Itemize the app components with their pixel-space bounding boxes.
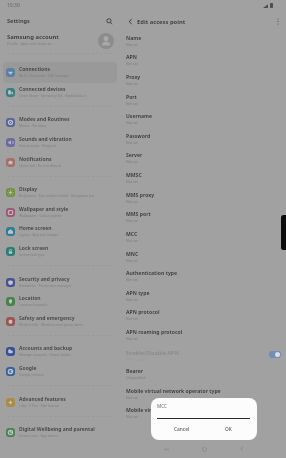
staticText: Notifications <box>19 156 52 163</box>
staticText: MCC <box>157 403 167 409</box>
staticText: Not set <box>126 42 138 47</box>
staticText: Google services <box>19 372 45 377</box>
button[interactable]: Google <box>0 361 119 381</box>
staticText: Security and privacy <box>19 276 70 283</box>
button[interactable]: Connected devices <box>0 82 119 102</box>
staticText: Display <box>19 186 38 193</box>
button[interactable]: Sounds and vibration <box>0 132 119 152</box>
staticText: Edit access point <box>137 18 186 26</box>
staticText: Connections <box>19 66 50 73</box>
staticText: Not set <box>126 140 138 145</box>
button[interactable]: Server <box>119 152 286 172</box>
button[interactable]: Connections <box>0 62 119 82</box>
button[interactable]: MMS port <box>119 211 286 231</box>
button[interactable]: Accounts and backup <box>0 341 119 361</box>
staticText: Not set <box>126 414 138 419</box>
staticText: MMS proxy <box>126 192 155 199</box>
staticText: Not set <box>126 101 138 106</box>
button[interactable]: APN protocol <box>119 309 286 329</box>
staticText: Enable/Disable APN <box>126 349 179 356</box>
button[interactable]: APN <box>119 54 286 74</box>
button[interactable]: Port <box>119 94 286 114</box>
staticText: Not set <box>126 258 138 263</box>
button[interactable]: APN type <box>119 290 286 310</box>
staticText: Wi-Fi · Bluetooth · SIM manager <box>19 73 70 78</box>
staticText: Medical info · Wireless emergency alerts <box>19 322 83 327</box>
staticText: Home screen <box>19 225 52 232</box>
button[interactable]: Mobile virtual network operator type <box>119 388 286 408</box>
staticText: Screen lock type <box>19 252 45 257</box>
button[interactable]: Lock screen <box>0 241 119 261</box>
button[interactable]: Digital Wellbeing and parental controls <box>0 422 119 442</box>
staticText: Google <box>19 365 37 372</box>
staticText: Lock screen <box>19 245 49 252</box>
staticText: Bearer <box>126 368 143 375</box>
staticText: Wallpaper and style <box>19 206 69 213</box>
button[interactable]: MMS proxy <box>119 192 286 212</box>
staticText: Not set <box>126 277 138 282</box>
staticText: Modes and Routines <box>19 116 70 123</box>
staticText: Not set <box>126 61 138 66</box>
staticText: Server <box>126 152 143 159</box>
button[interactable]: Display <box>0 182 119 202</box>
staticText: Wallpapers · Colour palette <box>19 213 63 218</box>
button[interactable]: Name <box>119 35 286 55</box>
staticText: Manage accounts · Smart Switch <box>19 352 71 357</box>
button[interactable]: Modes and Routines <box>0 112 119 132</box>
staticText: APN <box>126 54 137 61</box>
staticText: Layout · App icon badges <box>19 232 59 237</box>
staticText: Biometrics · Permission manager <box>19 283 72 288</box>
staticText: Brightness · Eye comfort shield · Naviga… <box>19 193 95 198</box>
staticText: Not set <box>126 81 138 86</box>
staticText: Not set <box>126 316 138 321</box>
staticText: Not set <box>126 120 138 125</box>
staticText: Quick Share · Samsung DeX · Android Auto <box>19 93 87 98</box>
staticText: Profile · Apps and features <box>7 41 52 46</box>
staticText: Advanced features <box>19 396 66 403</box>
button[interactable]: Advanced features <box>0 392 119 412</box>
button[interactable]: Bearer <box>119 368 286 388</box>
button[interactable]: Mobile virtual network operator value <box>119 407 286 427</box>
button[interactable]: Location <box>0 291 119 311</box>
button[interactable]: Home <box>197 442 211 456</box>
button[interactable]: APN roaming protocol <box>119 329 286 349</box>
button[interactable]: Enable/Disable APN <box>119 349 286 369</box>
button[interactable]: MNC <box>119 251 286 271</box>
staticText: Not set <box>126 199 138 204</box>
staticText: APN roaming protocol <box>126 329 183 336</box>
staticText: Safety and emergency <box>19 315 75 322</box>
button[interactable]: Username <box>119 113 286 133</box>
button[interactable]: Back <box>123 14 137 28</box>
button[interactable]: More options <box>271 14 285 28</box>
button[interactable]: OK <box>208 421 249 438</box>
staticText: 10:30 <box>7 2 20 9</box>
staticText: Not set <box>126 159 138 164</box>
button[interactable]: Security and privacy <box>0 272 119 292</box>
staticText: Not set <box>126 218 138 223</box>
button[interactable]: MMSC <box>119 172 286 192</box>
button[interactable]: Notifications <box>0 152 119 172</box>
staticText: Sound mode · Ringtone <box>19 143 57 148</box>
staticText: Not set <box>126 336 138 341</box>
staticText: Digital Wellbeing and parental controls <box>19 426 116 433</box>
button[interactable]: MCC <box>119 231 286 251</box>
button[interactable]: Enable APN <box>269 351 281 358</box>
button[interactable]: Samsung account <box>0 30 119 50</box>
button[interactable]: Cancel <box>159 421 205 438</box>
button[interactable]: Safety and emergency <box>0 311 119 331</box>
staticText: Accounts and backup <box>19 345 73 352</box>
staticText: Settings <box>7 17 30 25</box>
staticText: Status bar · Do not disturb <box>19 163 61 168</box>
staticText: Modes · Routines <box>19 123 47 128</box>
button[interactable]: Search <box>102 14 117 29</box>
button[interactable]: Proxy <box>119 74 286 94</box>
button[interactable]: Authentication type <box>119 270 286 290</box>
button[interactable]: Home screen <box>0 221 119 241</box>
staticText: Authentication type <box>126 270 178 277</box>
staticText: Mobile virtual network operator type <box>126 388 221 395</box>
staticText: Labs · S Pen · Side button <box>19 403 59 408</box>
button[interactable]: Password <box>119 133 286 153</box>
button[interactable]: Wallpaper and style <box>0 202 119 222</box>
